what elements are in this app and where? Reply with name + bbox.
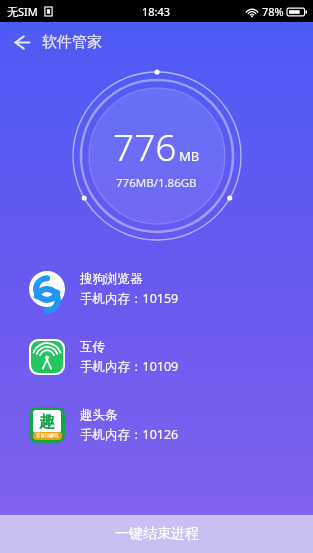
button[interactable]: 互传 [0, 331, 313, 383]
staticText: 一键结束进程 [115, 525, 199, 543]
staticText: 776 [113, 121, 177, 171]
button[interactable]: 搜狗浏览器 [0, 263, 313, 315]
staticText: 看资讯赚钱 [36, 433, 59, 439]
staticText: 软件管家 [42, 33, 102, 52]
staticText: MB [179, 147, 200, 165]
staticText: 无SIM [7, 4, 38, 19]
staticText: 互传 [80, 339, 105, 355]
staticText: 18:43 [142, 4, 171, 19]
staticText: 趣 [39, 412, 55, 432]
staticText: 手机内存：10109 [80, 358, 179, 375]
button[interactable]: 一键结束进程 [0, 515, 313, 553]
staticText: 搜狗浏览器 [80, 271, 143, 287]
staticText: 776MB/1.86GB [116, 175, 197, 191]
staticText: 趣头条 [80, 407, 118, 423]
button[interactable]: Back [0, 22, 42, 62]
staticText: 手机内存：10159 [80, 290, 179, 307]
button[interactable]: 趣 [0, 399, 313, 451]
staticText: 78% [262, 4, 284, 19]
staticText: 手机内存：10126 [80, 426, 179, 443]
